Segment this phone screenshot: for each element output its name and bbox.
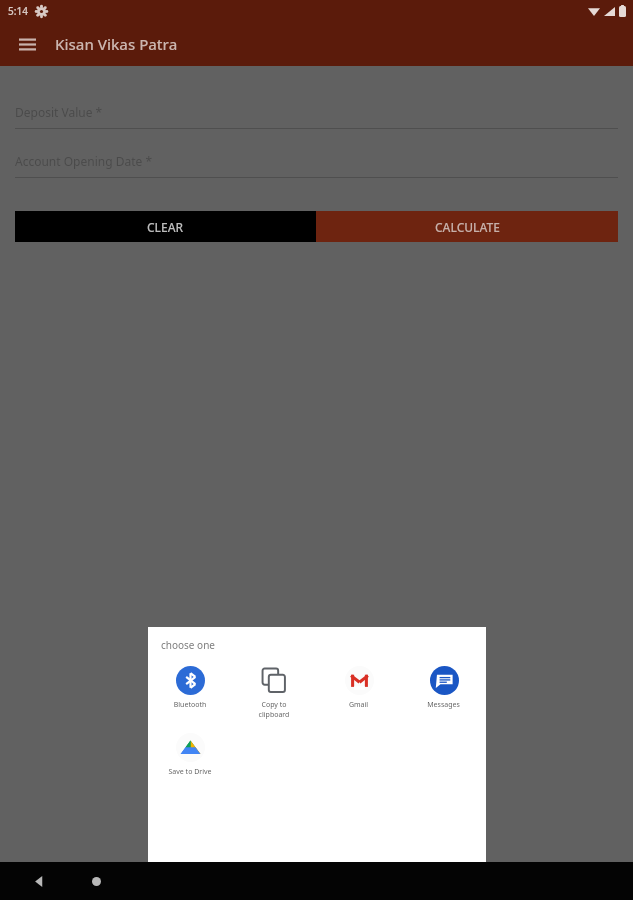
button[interactable]: Home	[81, 866, 111, 896]
staticText: Bluetooth	[148, 700, 232, 710]
staticText: Kisan Vikas Patra	[55, 34, 178, 54]
button[interactable]: Messages	[401, 665, 486, 710]
staticText: Messages	[401, 700, 486, 710]
staticText: CALCULATE	[435, 219, 500, 235]
button[interactable]: CALCULATE	[316, 211, 618, 242]
button[interactable]: Deposit Value *	[15, 104, 618, 129]
button[interactable]: Account Opening Date *	[15, 153, 618, 178]
staticText: 5:14	[8, 4, 28, 18]
button[interactable]: Open navigation menu	[12, 29, 42, 59]
staticText: Deposit Value *	[15, 104, 103, 120]
staticText: Account Opening Date *	[15, 153, 153, 169]
button[interactable]: Save to Drive	[148, 732, 232, 777]
button[interactable]: Gmail	[316, 665, 401, 710]
button[interactable]: Copy to clipboard	[232, 665, 316, 720]
button[interactable]: Bluetooth	[148, 665, 232, 710]
staticText: Gmail	[316, 700, 401, 710]
staticText: Save to Drive	[148, 767, 232, 777]
staticText: choose one	[161, 638, 215, 652]
button[interactable]: Back	[24, 866, 54, 896]
staticText: Copy to clipboard	[232, 700, 316, 720]
button[interactable]: CLEAR	[15, 211, 316, 242]
staticText: CLEAR	[147, 219, 184, 235]
